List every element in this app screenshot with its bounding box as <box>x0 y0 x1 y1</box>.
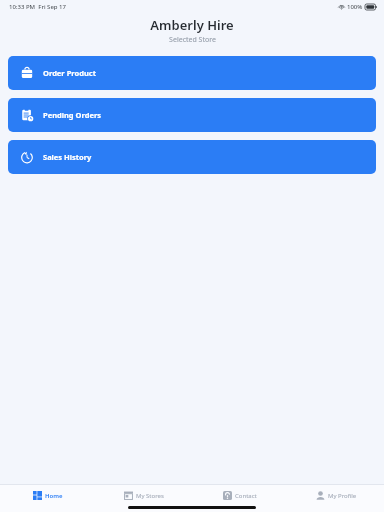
button[interactable]: Contact <box>192 485 288 505</box>
button[interactable]: My Stores <box>96 485 192 505</box>
staticText: Sales History <box>43 152 92 162</box>
staticText: Contact <box>235 492 257 500</box>
staticText: My Stores <box>136 492 164 500</box>
staticText: Order Product <box>43 68 96 78</box>
staticText: Amberly Hire <box>150 16 234 34</box>
staticText: 10:33 PM Fri Sep 17 <box>9 3 66 11</box>
staticText: Selected Store <box>169 35 216 45</box>
button[interactable]: Sales History <box>8 140 376 174</box>
staticText: 100% <box>347 3 363 11</box>
button[interactable]: Home <box>0 485 96 505</box>
staticText: Pending Orders <box>43 110 102 120</box>
staticText: My Profile <box>328 492 357 500</box>
button[interactable]: Pending Orders <box>8 98 376 132</box>
button[interactable]: My Profile <box>288 485 384 505</box>
staticText: Home <box>45 492 63 500</box>
button[interactable]: Order Product <box>8 56 376 90</box>
